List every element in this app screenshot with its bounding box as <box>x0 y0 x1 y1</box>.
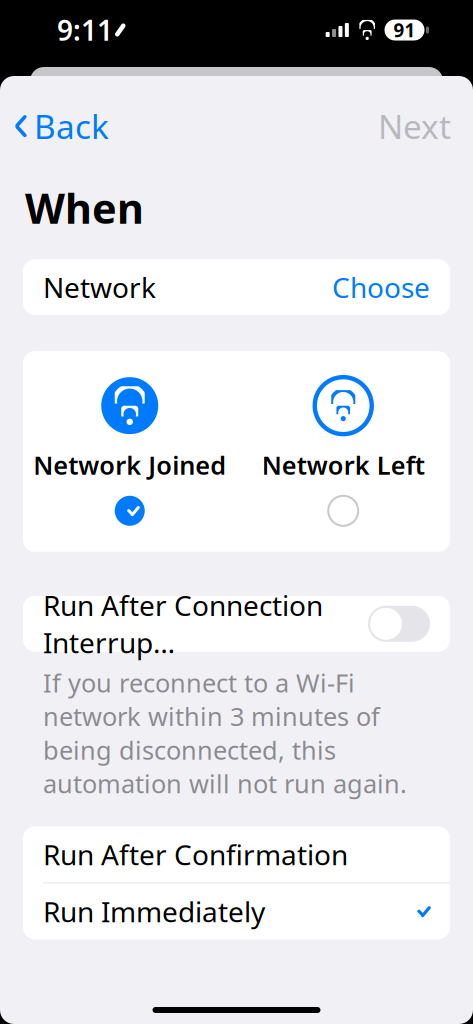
button[interactable]: Run After Connection Interrup… <box>23 596 450 652</box>
button[interactable]: Network Left <box>236 377 450 526</box>
button[interactable]: Network Joined <box>23 377 236 526</box>
staticText: Choose <box>332 269 430 306</box>
button[interactable]: Back <box>0 98 109 154</box>
staticText: 9:11 <box>57 11 113 49</box>
staticText: Network <box>43 269 156 306</box>
staticText: Network Joined <box>33 448 226 482</box>
staticText: Back <box>34 104 109 148</box>
staticText: Run Immediately <box>43 893 265 930</box>
button[interactable]: Run Immediately <box>23 883 450 939</box>
button[interactable]: Run After Confirmation <box>23 826 450 882</box>
staticText: Next <box>378 104 451 148</box>
staticText: 91 <box>393 18 415 42</box>
staticText: Network Left <box>262 448 425 482</box>
staticText: Run After Connection Interrup… <box>43 587 323 661</box>
button[interactable]: Next <box>378 98 473 154</box>
button[interactable]: Network <box>23 259 450 315</box>
staticText: Run After Confirmation <box>43 836 348 873</box>
staticText: If you reconnect to a Wi-Fi network with… <box>43 666 407 800</box>
staticText: When <box>25 180 144 235</box>
